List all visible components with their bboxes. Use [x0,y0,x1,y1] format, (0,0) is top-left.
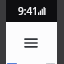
button[interactable]: Menu [16,28,46,58]
staticText: 9:41 [18,4,38,18]
